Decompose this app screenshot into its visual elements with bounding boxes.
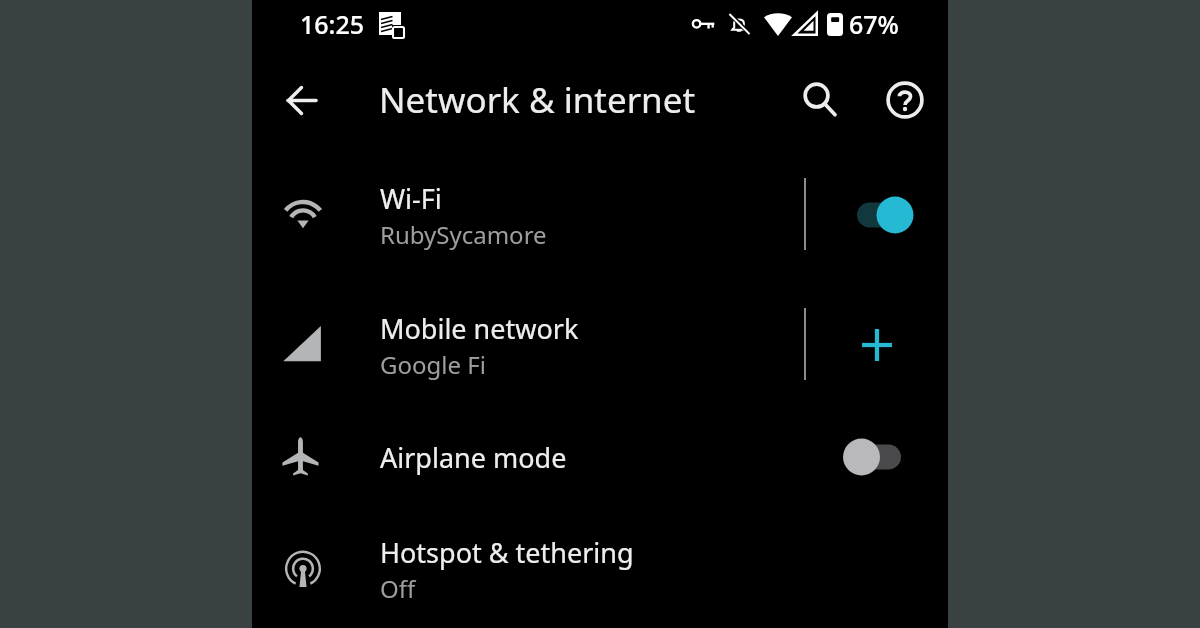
button[interactable]: Hotspot & tethering [252,504,948,628]
staticText: Mobile network [380,310,579,347]
button[interactable]: Mobile network [252,280,948,410]
staticText: Network & internet [379,76,696,124]
staticText: 16:25 [300,7,365,41]
button[interactable]: Wi-Fi [252,150,948,280]
button[interactable]: Back [273,72,329,128]
button[interactable]: Help [877,72,933,128]
staticText: Google Fi [380,348,486,381]
button[interactable]: Airplane mode off [829,428,919,486]
staticText: Wi-Fi [380,180,442,217]
button[interactable]: Search [792,71,848,127]
staticText: Airplane mode [380,439,567,476]
staticText: Off [380,572,416,605]
staticText: 67% [849,7,899,41]
button[interactable]: Airplane mode [252,410,948,504]
button[interactable]: Add network [849,317,905,373]
staticText: RubySycamore [380,218,547,251]
button[interactable]: Wi-Fi on [829,186,919,244]
staticText: Hotspot & tethering [380,534,634,571]
